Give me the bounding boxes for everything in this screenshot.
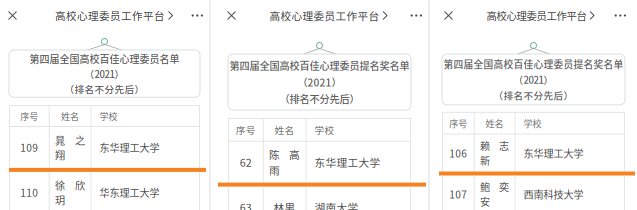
staticText: 高校心理委员工作平台 [269, 8, 379, 23]
staticText: 东华理工大学 [99, 140, 159, 155]
staticText: 志 [499, 138, 509, 153]
staticText: 晁 [55, 133, 65, 147]
staticText: （排名不分先后） [493, 88, 573, 102]
staticText: 徐 [55, 178, 65, 192]
staticText: 东华理工大学 [523, 146, 583, 160]
staticText: （2021） [84, 67, 124, 81]
staticText: 鲍 [480, 179, 490, 194]
button[interactable]: Close [0, 0, 25, 31]
staticText: 62 [240, 154, 252, 170]
staticText: 湖南大学 [314, 199, 358, 210]
staticText: 陈 [269, 147, 280, 162]
staticText: 学校 [523, 117, 541, 130]
button[interactable]: More [403, 0, 428, 31]
staticText: （排名不分先后） [64, 82, 144, 96]
staticText: 第四届全国高校百佳心理委员提名奖名单 [443, 57, 623, 71]
staticText: 新 [480, 153, 490, 168]
staticText: 姓名 [275, 123, 295, 137]
staticText: 110 [20, 185, 38, 200]
staticText: 奕 [499, 179, 509, 194]
staticText: 第四届全国高校百佳心理委员名单 [29, 51, 179, 66]
staticText: 翔 [55, 147, 65, 162]
staticText: 63 [240, 199, 252, 210]
staticText: 华东理工大学 [99, 185, 159, 200]
staticText: 姓名 [486, 117, 504, 130]
staticText: 学校 [314, 123, 334, 137]
staticText: 序号 [449, 117, 467, 130]
staticText: 高校心理委员工作平台 [55, 8, 165, 23]
staticText: 序号 [236, 123, 256, 137]
button[interactable]: More [607, 0, 637, 31]
staticText: 雨 [269, 162, 280, 177]
staticText: 第四届全国高校百佳心理委员提名奖名单 [229, 58, 409, 73]
staticText: 学校 [99, 109, 117, 123]
staticText: 姓名 [61, 109, 79, 123]
staticText: 之 [75, 133, 85, 147]
staticText: 玥 [55, 192, 65, 207]
staticText: 107 [449, 187, 467, 201]
staticText: 东华理工大学 [314, 154, 380, 170]
staticText: 109 [20, 140, 38, 155]
staticText: 安 [480, 194, 490, 209]
staticText: （排名不分先后） [279, 91, 359, 106]
staticText: 高校心理委员工作平台 [486, 8, 586, 23]
staticText: 林男 [274, 199, 296, 210]
button[interactable]: Close [211, 0, 244, 31]
staticText: 赖 [480, 138, 490, 153]
staticText: 欣 [75, 178, 85, 192]
staticText: 高 [289, 147, 300, 162]
staticText: 西南科技大学 [523, 187, 583, 201]
button[interactable]: More [184, 0, 209, 31]
staticText: 序号 [20, 109, 38, 123]
staticText: （2021） [297, 75, 341, 89]
staticText: （2021） [513, 73, 553, 86]
staticText: 106 [449, 146, 467, 160]
button[interactable]: Close [430, 0, 461, 31]
